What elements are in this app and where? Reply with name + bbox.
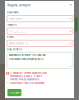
staticText: Email <box>7 36 14 39</box>
staticText: Телефон <box>7 23 16 26</box>
staticText: Иван Иванов <box>9 17 23 20</box>
staticText: Отправить <box>9 91 20 94</box>
staticText: политику конфиденциальности <box>10 78 39 81</box>
staticText: ◢ <box>70 65 72 67</box>
staticText: * Обязательные поля для заполнения <box>7 82 44 84</box>
button[interactable]: Согласие на обработку данных <box>7 72 9 74</box>
staticText: Уважаемые коллеги! Просим вас <box>9 54 46 57</box>
button[interactable]: +7 (___) ___-__-__ <box>7 28 73 34</box>
staticText: Ваш вопрос <box>7 48 22 51</box>
button[interactable]: example@mail.ru <box>7 40 73 47</box>
staticText: Ваше имя <box>7 11 18 14</box>
button[interactable]: политику конфиденциальности <box>10 78 39 81</box>
button[interactable]: Уважаемые коллеги! Просим вас <box>7 52 73 68</box>
staticText: Я принимаю условия обработки моих <box>10 72 47 74</box>
staticText: персональных данных, а также <box>10 75 42 78</box>
staticText: +7 (___) ___-__-__ <box>9 30 28 33</box>
staticText: разъяснить следующий вопрос <box>9 58 44 61</box>
staticText: Задать вопрос <box>7 4 31 7</box>
button[interactable]: Отправить <box>7 89 21 96</box>
staticText: example@mail.ru <box>9 42 28 45</box>
button[interactable]: Закрыть <box>68 3 73 7</box>
button[interactable]: Иван Иванов <box>7 15 73 22</box>
staticText: ✕ <box>70 3 72 6</box>
